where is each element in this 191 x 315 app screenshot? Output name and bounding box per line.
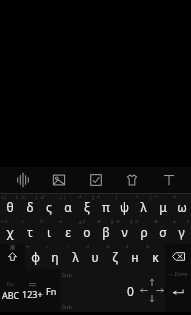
staticText: θ	[6, 199, 14, 215]
button[interactable]: ⊖	[115, 219, 134, 244]
staticText: ⊙	[135, 219, 139, 224]
button[interactable]: Text formatting	[155, 167, 183, 193]
staticText: ⌐ Done	[169, 271, 188, 278]
button[interactable]: Backspace	[165, 244, 191, 269]
button[interactable]: ⊿	[77, 194, 96, 219]
staticText: 8	[111, 219, 114, 225]
staticText: ∧Γ	[40, 194, 46, 200]
staticText: ∝	[154, 194, 158, 199]
button[interactable]: 0	[122, 269, 139, 312]
button[interactable]: Voice input	[9, 167, 37, 193]
staticText: ρ	[140, 224, 148, 240]
button[interactable]: ⊃	[20, 219, 39, 244]
staticText: ⊿	[78, 194, 82, 199]
staticText: Sup	[62, 271, 72, 278]
staticText: ∨|	[21, 194, 27, 200]
staticText: ψ	[120, 199, 129, 215]
button[interactable]: ←⊂	[0, 219, 20, 244]
button[interactable]: Clipboard	[82, 167, 110, 193]
staticText: λ	[72, 249, 79, 265]
button[interactable]: Arrow keys	[139, 269, 165, 312]
button[interactable]: ↔	[58, 219, 77, 244]
button[interactable]: √	[45, 244, 65, 269]
staticText: ζ	[112, 249, 118, 265]
button[interactable]: ∘	[65, 244, 85, 269]
staticText: 123+	[22, 288, 43, 300]
staticText: β	[102, 224, 110, 240]
staticText: J	[36, 194, 38, 200]
button[interactable]: ≠	[125, 244, 145, 269]
staticText: λ	[140, 199, 147, 215]
staticText: μ	[159, 199, 167, 215]
button[interactable]: Space	[60, 269, 122, 312]
staticText: ν	[121, 224, 128, 240]
staticText: π	[102, 199, 110, 215]
staticText: δ	[26, 199, 34, 215]
button[interactable]: Stickers	[45, 167, 73, 193]
staticText: ∪	[86, 244, 90, 249]
staticText: *	[187, 219, 190, 225]
staticText: ⬆	[11, 246, 14, 250]
button[interactable]: ∝	[153, 194, 172, 219]
staticText: 9	[130, 219, 133, 225]
staticText: ι	[47, 224, 51, 240]
button[interactable]: ∪	[85, 244, 105, 269]
button[interactable]: ∨|	[20, 194, 39, 219]
button[interactable]: ∞	[134, 194, 153, 219]
button[interactable]: ↔	[25, 244, 45, 269]
button[interactable]: 123+	[21, 269, 43, 312]
staticText: ⊥|	[59, 194, 66, 200]
staticText: ο	[83, 224, 91, 240]
staticText: )	[150, 194, 152, 200]
button[interactable]: ⌀	[96, 194, 115, 219]
staticText: υ	[91, 249, 99, 265]
button[interactable]: ∧|	[0, 194, 20, 219]
staticText: ≠	[126, 244, 129, 250]
staticText: √	[46, 244, 49, 249]
staticText: ⊖	[116, 219, 120, 224]
staticText: ∞	[135, 194, 139, 199]
staticText: ξ	[84, 199, 90, 215]
staticText: ≤	[106, 244, 110, 249]
button[interactable]: Enter	[165, 269, 191, 312]
staticText: ε	[65, 224, 71, 240]
staticText: φ	[31, 249, 40, 265]
staticText: ∧|	[1, 194, 7, 200]
button[interactable]: ⊙	[134, 219, 153, 244]
button[interactable]: Theme	[118, 167, 146, 193]
button[interactable]: Fn	[43, 269, 60, 312]
button[interactable]: ≥	[145, 244, 165, 269]
staticText: ⊕	[97, 219, 101, 224]
staticText: ⊃	[21, 219, 25, 224]
button[interactable]: Esc	[0, 269, 21, 312]
button[interactable]: ⊥|	[58, 194, 77, 219]
staticText: ↔	[26, 244, 30, 249]
staticText: ≪7	[78, 219, 86, 225]
button[interactable]: ≪7	[77, 219, 96, 244]
staticText: γ	[178, 224, 185, 240]
button[interactable]: ⊗	[153, 219, 172, 244]
staticText: ∘	[66, 244, 69, 249]
staticText: Fn	[46, 285, 57, 297]
button[interactable]: ∀	[39, 219, 58, 244]
staticText: ω	[177, 199, 187, 215]
staticText: ς	[46, 199, 52, 215]
staticText: α	[64, 199, 72, 215]
button[interactable]: ⌀	[172, 219, 191, 244]
staticText: ⊗	[154, 219, 158, 224]
staticText: 0	[127, 283, 134, 299]
button[interactable]: ≤	[105, 244, 125, 269]
staticText: ‖	[92, 194, 95, 200]
staticText: (	[116, 194, 118, 200]
button[interactable]: ⊕	[96, 219, 115, 244]
staticText: Sub	[62, 303, 72, 310]
staticText: н	[131, 249, 139, 265]
staticText: ∀	[40, 219, 44, 224]
button[interactable]: (	[115, 194, 134, 219]
button[interactable]: Shift	[0, 244, 25, 269]
staticText: η	[51, 249, 59, 265]
staticText: κ	[152, 249, 159, 265]
button[interactable]: ⌀	[172, 194, 191, 219]
staticText: ⌀	[173, 194, 176, 199]
button[interactable]: ∧Γ	[39, 194, 58, 219]
